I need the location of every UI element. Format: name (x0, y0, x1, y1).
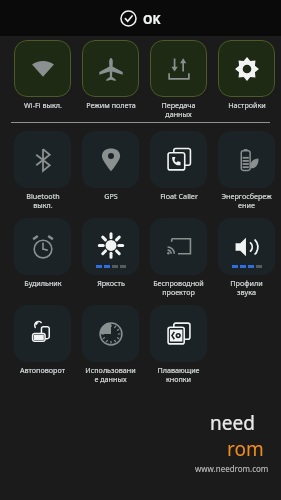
staticText: Плавающие кнопки (157, 365, 200, 385)
button[interactable]: Автоповорот (14, 305, 71, 375)
staticText: Энергосбереж ение (221, 191, 272, 211)
staticText: need (210, 410, 255, 436)
staticText: www.needrom.com (195, 463, 269, 474)
button[interactable]: Яркость (82, 218, 139, 288)
staticText: Автоповорот (20, 365, 65, 375)
staticText: Float Caller (160, 191, 198, 201)
staticText: Режим полета (86, 100, 136, 110)
button[interactable]: Float Caller (150, 131, 207, 201)
staticText: Профили звука (230, 278, 263, 298)
button[interactable]: Использование данных (82, 305, 139, 385)
button[interactable]: Будильник (14, 218, 71, 288)
staticText: Яркость (97, 278, 125, 288)
staticText: Wi-Fi выкл. (24, 100, 62, 110)
staticText: Передача данных (161, 100, 196, 120)
staticText: Использовани е данных (85, 365, 136, 385)
staticText: OK (143, 11, 161, 27)
staticText: rom (227, 436, 264, 462)
button[interactable]: Энергосбережение (218, 131, 275, 211)
button[interactable]: Передачаданных (150, 40, 207, 120)
staticText: Bluetooth выкл. (26, 191, 60, 211)
button[interactable]: GPS (82, 131, 139, 201)
button[interactable]: Bluetoothвыкл. (14, 131, 71, 211)
staticText: Настройки (228, 100, 266, 110)
staticText: Беспроводной проектор (153, 278, 204, 298)
button[interactable]: Плавающиекнопки (150, 305, 207, 385)
button[interactable]: Профилизвука (218, 218, 275, 298)
button[interactable]: OK (114, 7, 167, 30)
button[interactable]: Wi-Fi выкл. (14, 40, 71, 110)
button[interactable]: Настройки (218, 40, 275, 110)
staticText: GPS (104, 191, 118, 201)
staticText: Будильник (24, 278, 62, 288)
button[interactable]: Режим полета (82, 40, 139, 110)
button[interactable]: Беспроводнойпроектор (150, 218, 207, 298)
